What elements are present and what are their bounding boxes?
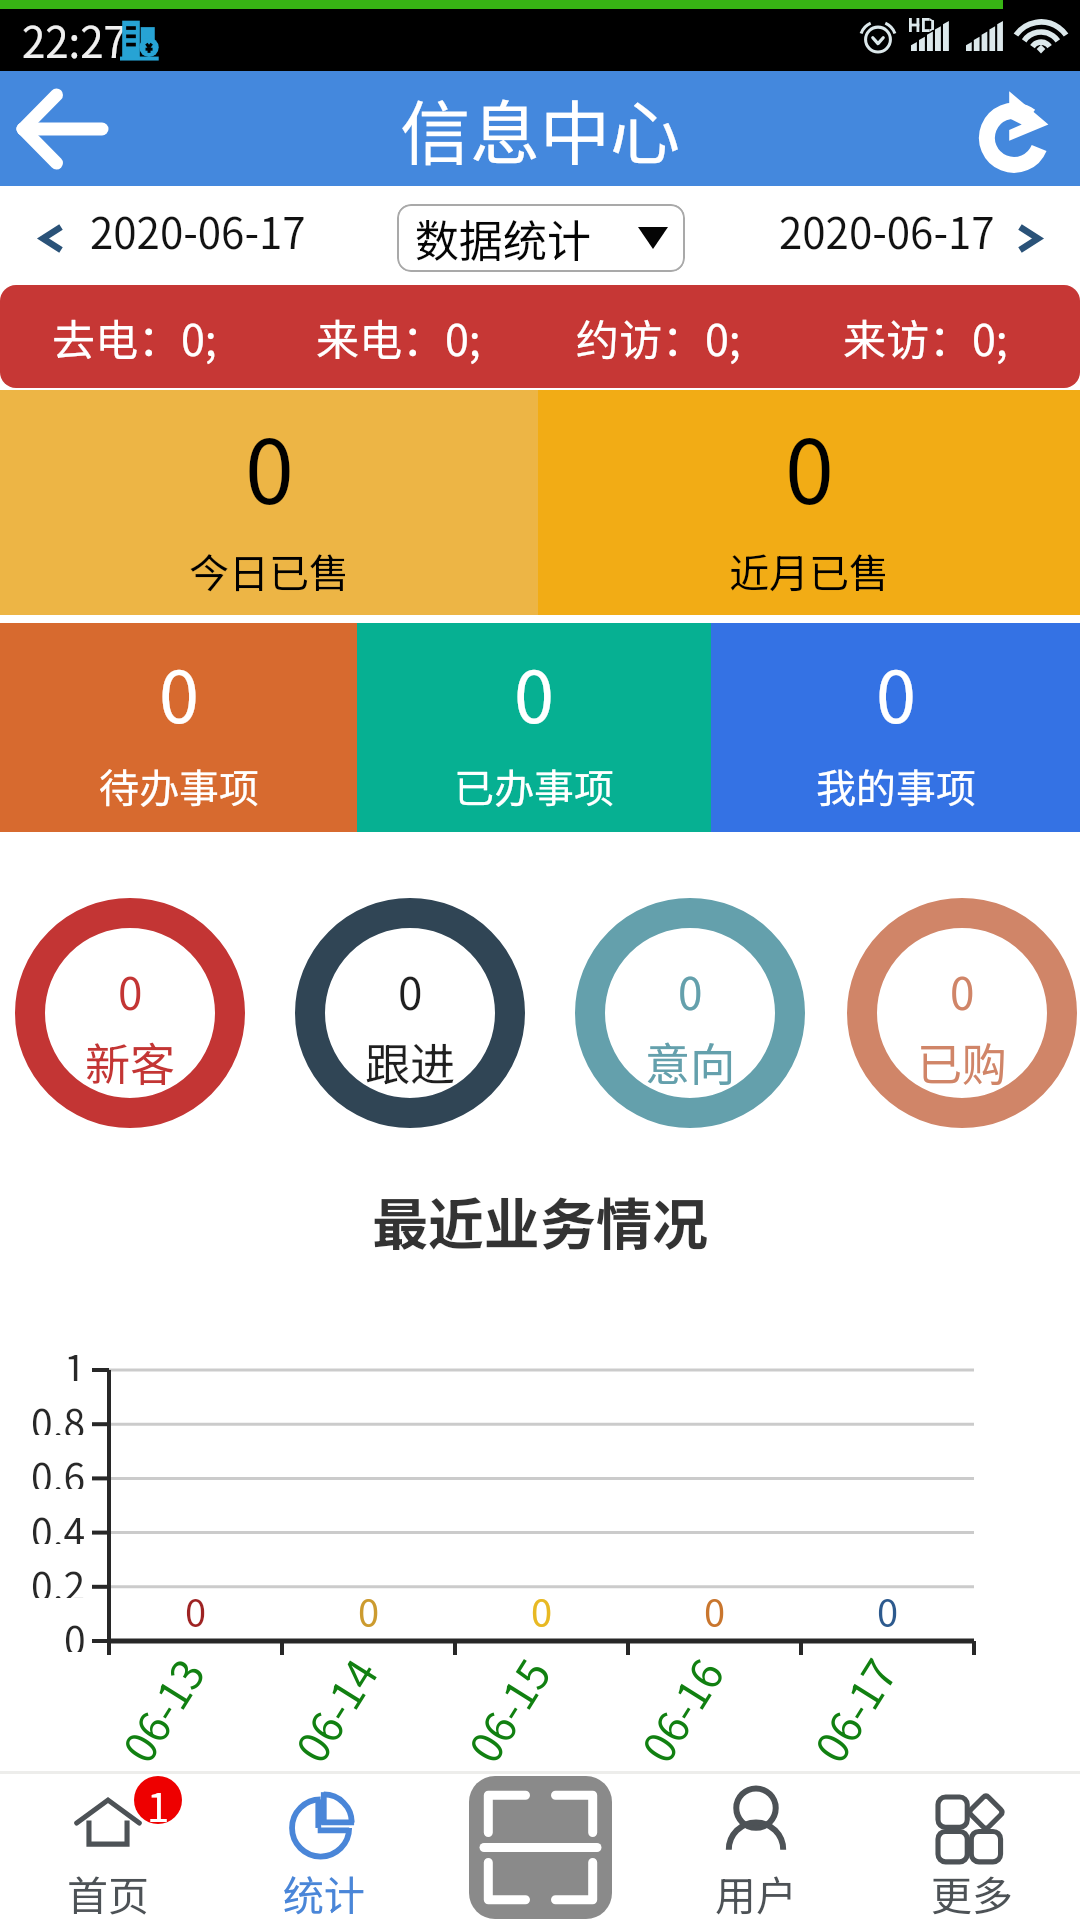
staticText: 最近业务情况 <box>372 1180 708 1261</box>
button[interactable]: 2020-06-17 <box>90 200 306 261</box>
staticText: 0 <box>159 639 199 743</box>
staticText: 1 <box>64 1339 86 1381</box>
staticText: 待办事项 <box>99 757 259 815</box>
button[interactable]: 去电：0; <box>0 285 1080 388</box>
staticText: 已购 <box>917 1029 1008 1094</box>
staticText: 新客 <box>85 1029 176 1094</box>
staticText: 0 <box>514 639 554 743</box>
staticText: 0 <box>704 1583 726 1627</box>
staticText: 22:27 <box>22 9 127 70</box>
button[interactable]: Previous day <box>17 203 87 273</box>
button[interactable]: 0 <box>0 390 538 615</box>
staticText: 0.6 <box>31 1447 86 1489</box>
button[interactable]: 0 <box>575 898 805 1128</box>
staticText: 0 <box>531 1583 553 1627</box>
button[interactable]: 数据统计 <box>397 204 685 272</box>
staticText: 0 <box>678 959 703 1023</box>
button[interactable]: Refresh <box>960 71 1080 186</box>
staticText: 06-16 <box>625 1645 736 1772</box>
button[interactable]: 用户 <box>648 1771 864 1920</box>
button[interactable]: Back <box>0 71 120 186</box>
button[interactable]: 统计 <box>216 1771 432 1920</box>
staticText: 0.4 <box>31 1502 86 1544</box>
staticText: 统计 <box>283 1863 365 1920</box>
staticText: 0 <box>398 959 423 1023</box>
staticText: 0 <box>358 1583 380 1627</box>
button[interactable]: 0 <box>15 898 245 1128</box>
button[interactable]: 0 <box>295 898 525 1128</box>
button[interactable]: 0 <box>847 898 1077 1128</box>
staticText: 更多 <box>931 1863 1013 1920</box>
staticText: 数据统计 <box>415 206 591 270</box>
button[interactable]: Next day <box>994 203 1064 273</box>
button[interactable]: 0 <box>357 623 711 832</box>
staticText: 06-15 <box>452 1645 563 1772</box>
staticText: 来电：0; <box>316 306 481 368</box>
button[interactable]: 1 <box>0 1771 216 1920</box>
staticText: 来访：0; <box>843 306 1008 368</box>
staticText: 首页 <box>67 1863 149 1920</box>
staticText: 信息中心 <box>400 78 680 179</box>
staticText: 我的事项 <box>816 757 976 815</box>
staticText: 用户 <box>715 1863 797 1920</box>
staticText: 0 <box>185 1583 207 1627</box>
staticText: 0.8 <box>31 1393 86 1435</box>
staticText: 已办事项 <box>454 757 614 815</box>
button[interactable]: 0 <box>0 623 357 832</box>
staticText: 06-14 <box>279 1645 390 1772</box>
staticText: 近月已售 <box>729 542 889 600</box>
staticText: 去电：0; <box>52 306 217 368</box>
button[interactable]: 0 <box>538 390 1080 615</box>
staticText: 0 <box>64 1610 86 1652</box>
staticText: 今日已售 <box>189 542 349 600</box>
button[interactable]: Scan <box>469 1776 612 1919</box>
staticText: 1 <box>147 1776 170 1824</box>
staticText: 0 <box>785 402 834 529</box>
button[interactable]: 更多 <box>864 1771 1080 1920</box>
staticText: 意向 <box>645 1029 736 1094</box>
staticText: 约访：0; <box>576 306 741 368</box>
staticText: 0.2 <box>31 1556 86 1598</box>
button[interactable]: 2020-06-17 <box>779 200 995 261</box>
staticText: 06-17 <box>798 1645 909 1772</box>
staticText: 0 <box>950 959 975 1023</box>
staticText: 0 <box>118 959 143 1023</box>
staticText: 0 <box>877 1583 899 1627</box>
staticText: 0 <box>245 402 294 529</box>
staticText: 0 <box>876 639 916 743</box>
staticText: 06-13 <box>106 1645 217 1772</box>
staticText: 跟进 <box>365 1029 456 1094</box>
button[interactable]: 0 <box>711 623 1080 832</box>
